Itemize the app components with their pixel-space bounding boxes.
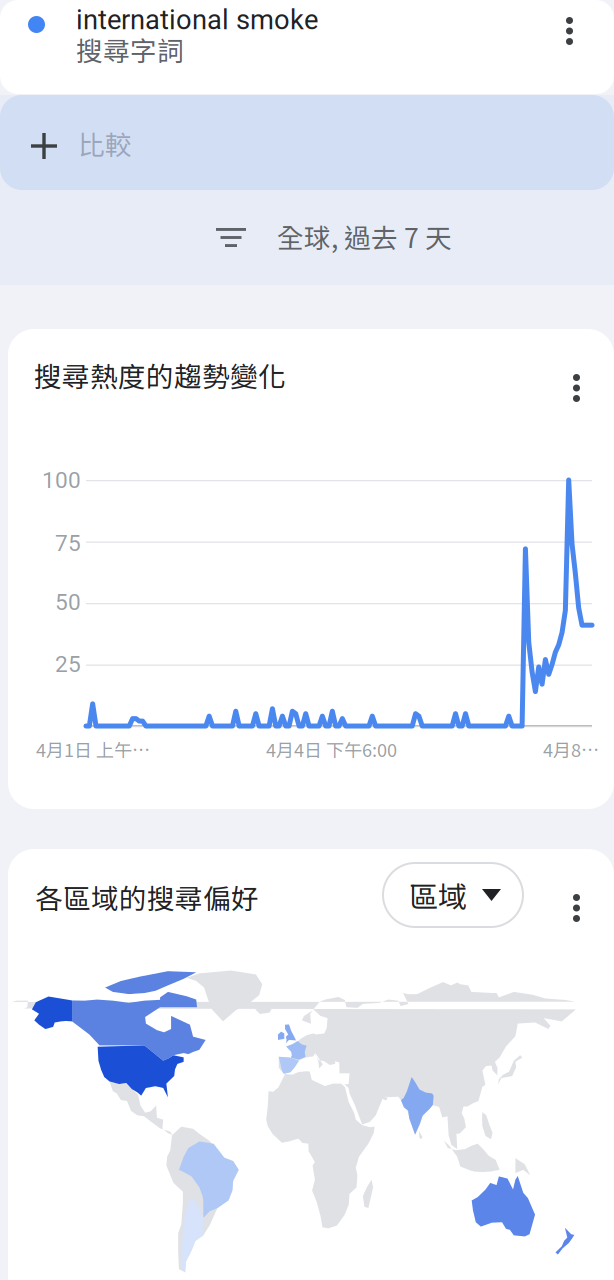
staticText: 搜尋字詞 bbox=[76, 30, 184, 69]
staticText: 100 bbox=[42, 467, 81, 494]
button[interactable]: More options bbox=[559, 360, 594, 416]
staticText: 25 bbox=[55, 651, 81, 678]
button[interactable]: international smoke bbox=[0, 0, 614, 94]
staticText: international smoke bbox=[76, 4, 318, 36]
staticText: 比較 bbox=[78, 124, 132, 163]
staticText: 50 bbox=[55, 589, 81, 616]
staticText: 4月4日 下午6:00 bbox=[266, 736, 397, 762]
staticText: 各區域的搜尋偏好 bbox=[35, 877, 259, 917]
staticText: 4月8… bbox=[543, 736, 599, 762]
button[interactable]: 比較 bbox=[0, 95, 614, 190]
staticText: 75 bbox=[55, 530, 81, 557]
button[interactable]: 區域 bbox=[383, 863, 523, 927]
staticText: 4月1日 上午… bbox=[36, 736, 150, 762]
staticText: 全球, 過去 7 天 bbox=[277, 217, 452, 256]
staticText: 區域 bbox=[409, 874, 467, 916]
button[interactable]: More options bbox=[559, 880, 594, 936]
button[interactable]: 全球, 過去 7 天 bbox=[0, 190, 614, 285]
staticText: 搜尋熱度的趨勢變化 bbox=[34, 355, 286, 395]
